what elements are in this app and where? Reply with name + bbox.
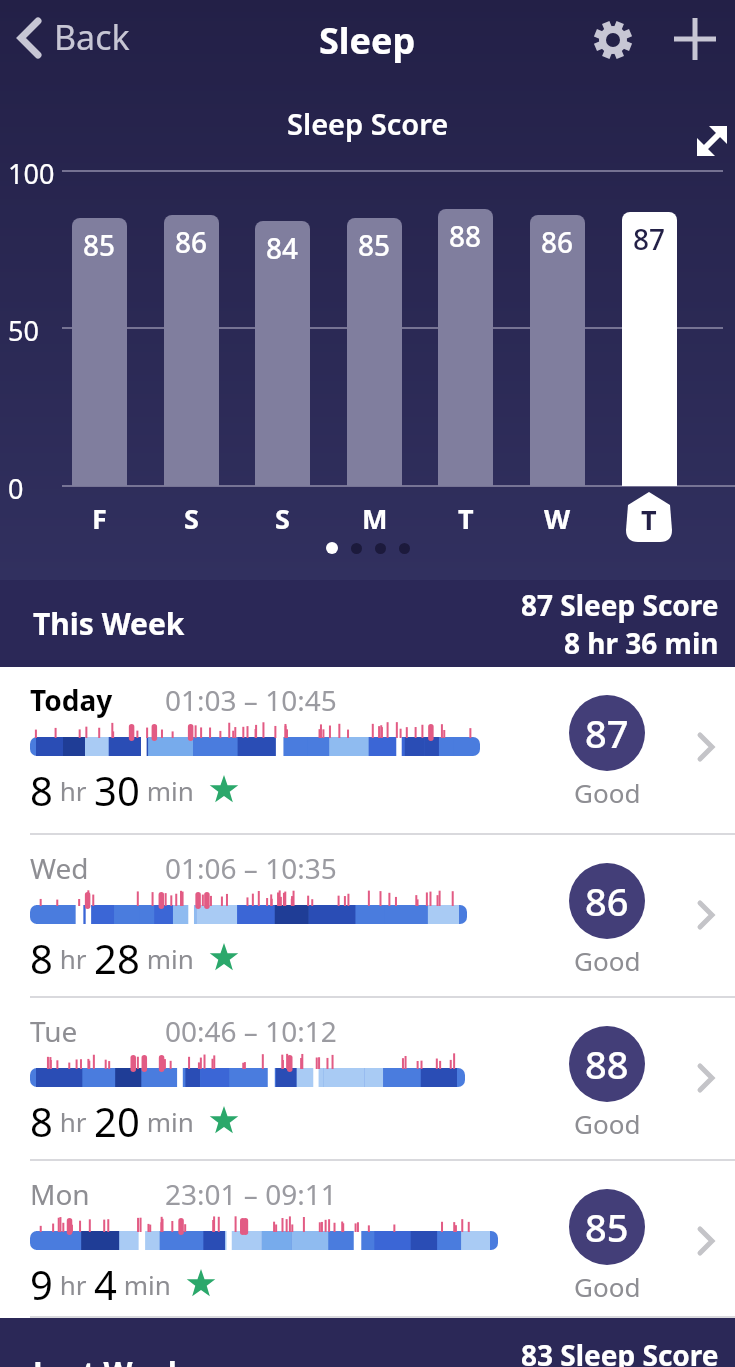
button[interactable]: Mon bbox=[0, 1161, 735, 1318]
staticText: 87 bbox=[633, 220, 666, 258]
staticText: Today bbox=[30, 681, 113, 719]
staticText: min bbox=[140, 941, 208, 976]
staticText: This Week bbox=[33, 603, 185, 644]
staticText: M bbox=[362, 500, 388, 537]
staticText: W bbox=[544, 500, 571, 537]
staticText: 8 bbox=[30, 763, 53, 817]
staticText: 88 bbox=[449, 217, 482, 255]
button[interactable] bbox=[590, 17, 636, 63]
button[interactable]: Back bbox=[14, 14, 130, 60]
staticText: hr bbox=[53, 1267, 94, 1302]
staticText: Sleep bbox=[319, 16, 416, 65]
staticText: 86 bbox=[585, 875, 629, 927]
staticText: Good bbox=[574, 1269, 641, 1304]
staticText: 83 Sleep Score bbox=[521, 1336, 719, 1367]
staticText: Back bbox=[54, 14, 130, 60]
staticText: T bbox=[641, 501, 657, 538]
staticText: F bbox=[92, 500, 107, 537]
staticText: 85 bbox=[83, 226, 116, 264]
staticText: 88 bbox=[585, 1038, 629, 1090]
staticText: hr bbox=[53, 1104, 94, 1139]
staticText: T bbox=[458, 500, 474, 537]
staticText: 8 bbox=[30, 1094, 53, 1148]
staticText: 00:46 – 10:12 bbox=[165, 1012, 337, 1050]
staticText: 0 bbox=[8, 470, 24, 507]
staticText: 8 hr 36 min bbox=[564, 624, 719, 662]
staticText: min bbox=[140, 773, 208, 808]
staticText: S bbox=[184, 500, 199, 537]
staticText: 86 bbox=[175, 223, 208, 261]
staticText: 23:01 – 09:11 bbox=[165, 1175, 337, 1213]
staticText: 87 bbox=[585, 707, 629, 759]
staticText: min bbox=[117, 1267, 185, 1302]
staticText: 8 bbox=[30, 931, 53, 985]
staticText: Good bbox=[574, 775, 641, 810]
staticText: 20 bbox=[94, 1094, 140, 1148]
staticText: Mon bbox=[30, 1175, 90, 1213]
button[interactable]: This Week bbox=[0, 580, 735, 667]
staticText: 50 bbox=[8, 312, 39, 349]
staticText: 4 bbox=[94, 1257, 117, 1311]
staticText: Sleep Score bbox=[287, 104, 449, 143]
staticText: Wed bbox=[30, 849, 89, 887]
staticText: S bbox=[275, 500, 290, 537]
staticText: hr bbox=[53, 773, 94, 808]
button[interactable]: Wed bbox=[0, 835, 735, 998]
button[interactable]: Today bbox=[0, 667, 735, 835]
staticText: Good bbox=[574, 1106, 641, 1141]
staticText: Good bbox=[574, 943, 641, 978]
staticText: 01:03 – 10:45 bbox=[165, 681, 337, 719]
staticText: hr bbox=[53, 941, 94, 976]
button[interactable] bbox=[672, 16, 718, 62]
staticText: 86 bbox=[541, 223, 574, 261]
staticText: 85 bbox=[358, 226, 391, 264]
staticText: 84 bbox=[266, 229, 299, 267]
staticText: 100 bbox=[8, 155, 55, 192]
staticText: 85 bbox=[585, 1201, 629, 1253]
staticText: 87 Sleep Score bbox=[521, 586, 719, 624]
staticText: 28 bbox=[94, 931, 140, 985]
staticText: min bbox=[140, 1104, 208, 1139]
staticText: 9 bbox=[30, 1257, 53, 1311]
staticText: 01:06 – 10:35 bbox=[165, 849, 337, 887]
staticText: Tue bbox=[30, 1012, 78, 1050]
staticText: 30 bbox=[94, 763, 140, 817]
button[interactable] bbox=[695, 124, 729, 158]
button[interactable]: Tue bbox=[0, 998, 735, 1161]
staticText: Last Week bbox=[33, 1352, 187, 1367]
